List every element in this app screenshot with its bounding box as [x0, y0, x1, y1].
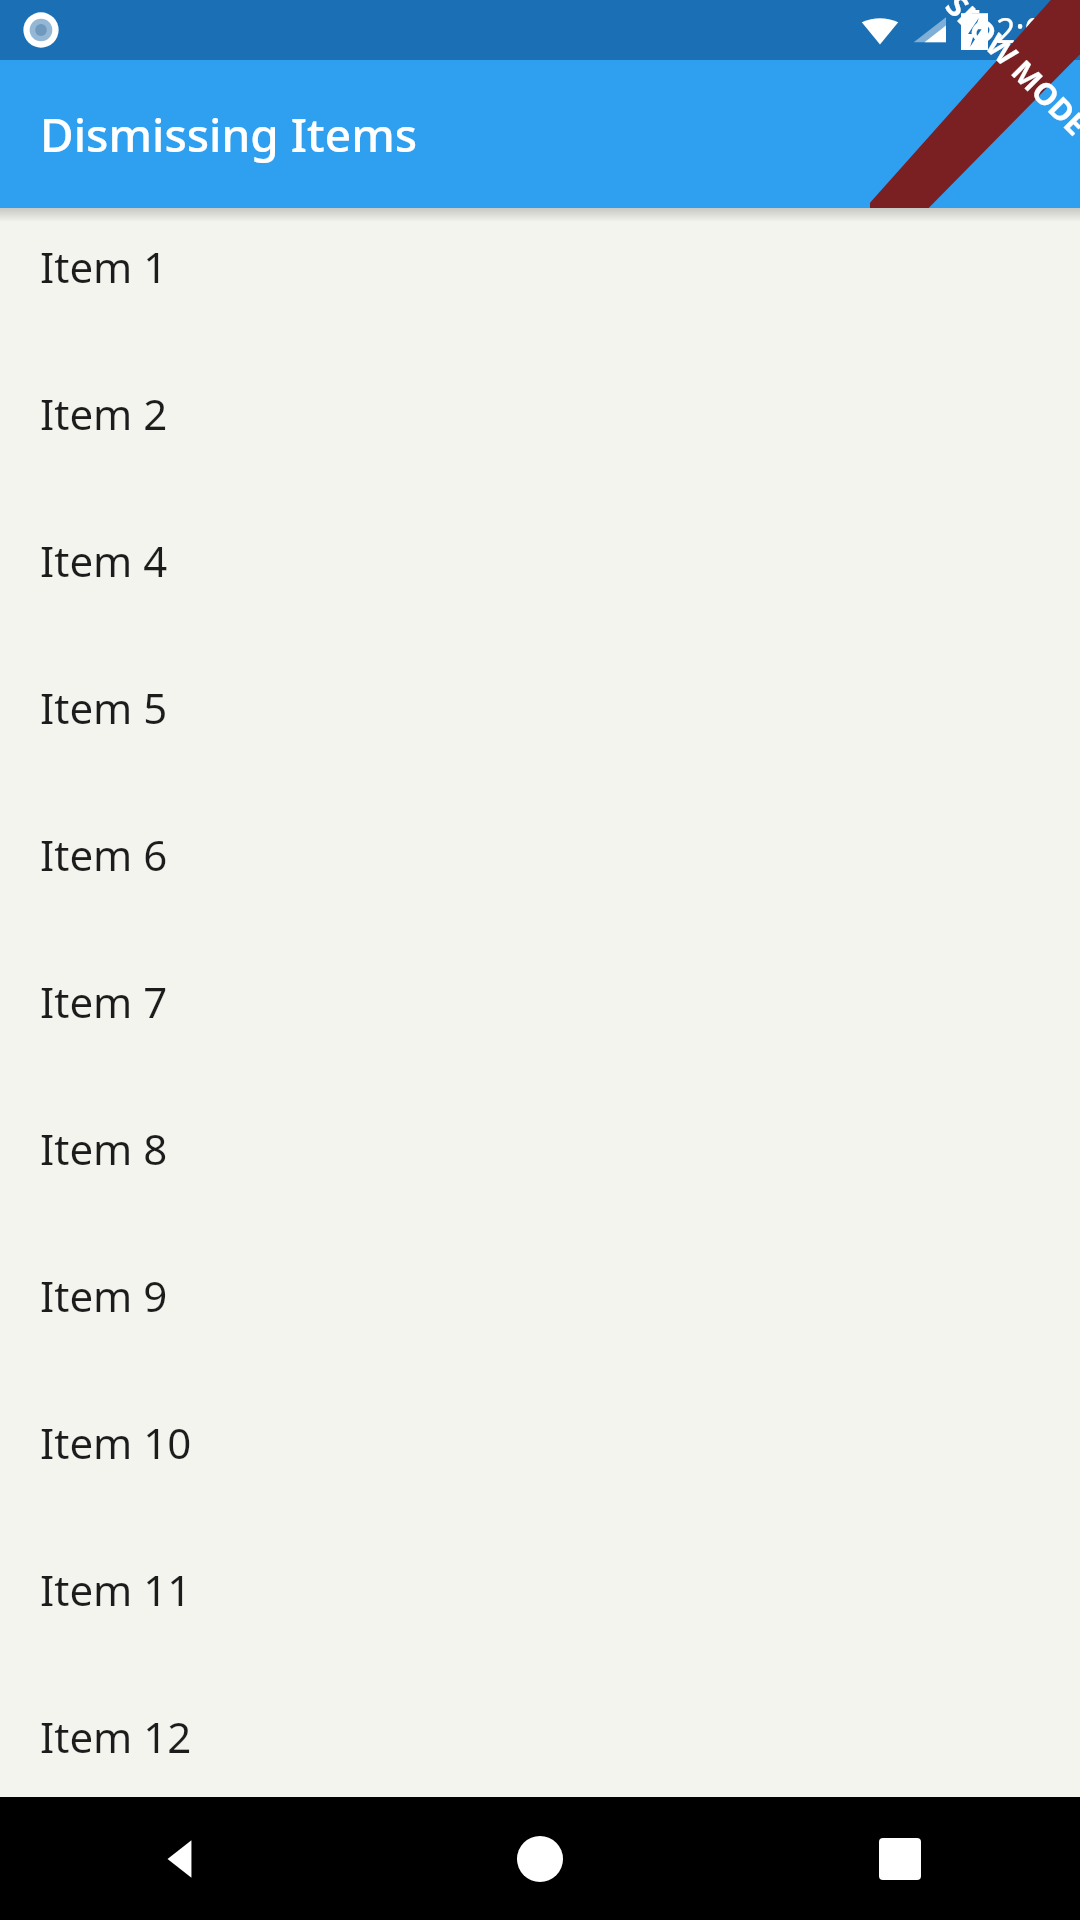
staticText: Item 1: [40, 238, 168, 295]
button[interactable]: Item 2: [0, 377, 1080, 524]
staticText: Item 8: [40, 1120, 168, 1177]
button[interactable]: Back: [0, 1797, 360, 1920]
staticText: Item 5: [40, 679, 168, 736]
button[interactable]: Item 11: [0, 1553, 1080, 1700]
button[interactable]: Item 4: [0, 524, 1080, 671]
button[interactable]: Home: [360, 1797, 720, 1920]
staticText: SLOW MODE: [937, 0, 1080, 144]
staticText: Item 10: [40, 1414, 192, 1471]
button[interactable]: Recent apps: [720, 1797, 1080, 1920]
button[interactable]: Item 5: [0, 671, 1080, 818]
staticText: Item 4: [40, 532, 168, 589]
staticText: Item 11: [40, 1561, 192, 1618]
staticText: Item 7: [40, 973, 168, 1030]
staticText: Item 12: [40, 1708, 192, 1765]
staticText: Item 2: [40, 385, 168, 442]
button[interactable]: Item 6: [0, 818, 1080, 965]
staticText: Dismissing Items: [40, 103, 418, 166]
button[interactable]: Item 10: [0, 1406, 1080, 1553]
button[interactable]: Item 8: [0, 1112, 1080, 1259]
button[interactable]: Item 1: [0, 230, 1080, 377]
staticText: 2:01: [996, 7, 1064, 53]
button[interactable]: Item 9: [0, 1259, 1080, 1406]
button[interactable]: Item 7: [0, 965, 1080, 1112]
button[interactable]: Item 12: [0, 1700, 1080, 1797]
staticText: Item 9: [40, 1267, 168, 1324]
staticText: Item 6: [40, 826, 168, 883]
